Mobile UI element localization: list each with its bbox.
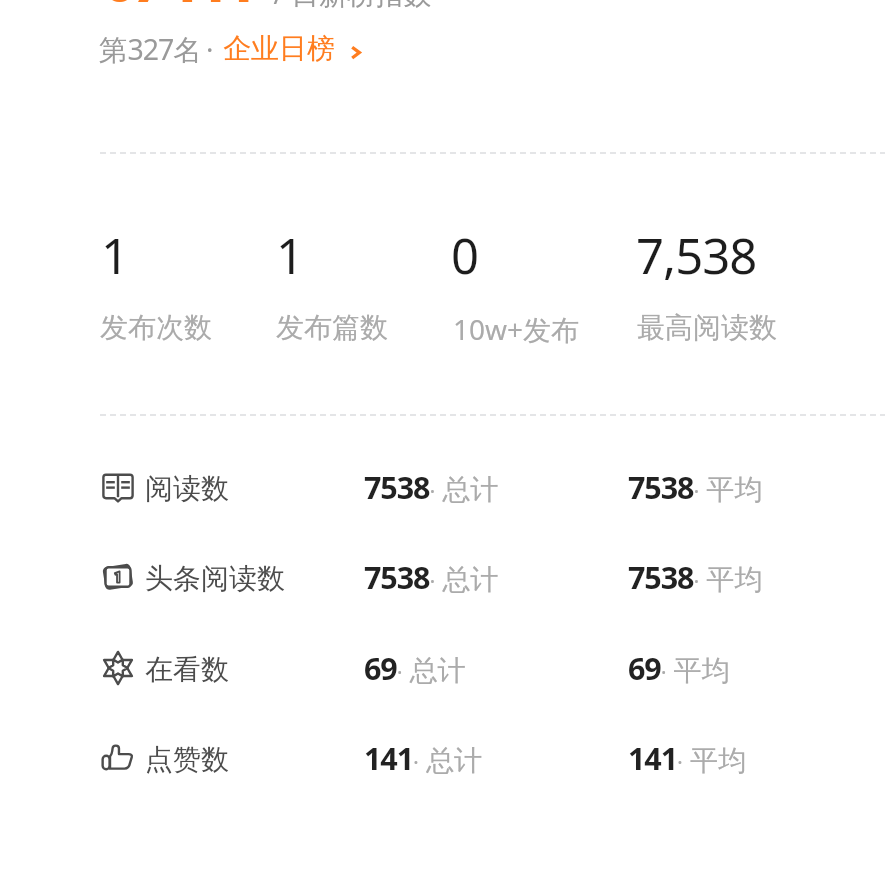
- staticText: 1: [276, 222, 304, 289]
- staticText: 7,538: [636, 222, 757, 289]
- staticText: 企业日榜: [223, 31, 335, 66]
- staticText: 69· 总计: [364, 647, 466, 689]
- staticText: 在看数: [145, 652, 229, 687]
- staticText: 0: [451, 222, 479, 289]
- staticText: 发布篇数: [276, 310, 388, 345]
- button[interactable]: 头条阅读数: [96, 551, 796, 601]
- other: 查看企业日榜: [350, 46, 366, 62]
- staticText: 点赞数: [145, 742, 229, 777]
- staticText: 1: [101, 222, 129, 289]
- staticText: 最高阅读数: [637, 310, 777, 345]
- staticText: 67: [105, 0, 162, 16]
- staticText: 第327名: [99, 30, 202, 68]
- button[interactable]: 阅读数: [96, 461, 796, 511]
- button[interactable]: 在看数: [96, 642, 796, 692]
- staticText: 7538· 平均: [628, 556, 763, 598]
- staticText: 7538· 总计: [364, 556, 499, 598]
- staticText: 7538· 总计: [364, 466, 499, 508]
- staticText: 69· 平均: [628, 647, 730, 689]
- staticText: 阅读数: [145, 471, 229, 506]
- staticText: 111: [170, 0, 255, 16]
- staticText: 头条阅读数: [145, 561, 285, 596]
- staticText: / 日新榜指数: [259, 0, 432, 12]
- staticText: 141· 总计: [364, 737, 483, 779]
- button[interactable]: 点赞数: [96, 732, 796, 782]
- button[interactable]: 第327名: [96, 30, 371, 68]
- staticText: 7538· 平均: [628, 466, 763, 508]
- staticText: 发布次数: [100, 310, 212, 345]
- staticText: 10w+发布: [453, 310, 580, 348]
- staticText: 141· 平均: [628, 737, 747, 779]
- staticText: ·: [206, 30, 214, 68]
